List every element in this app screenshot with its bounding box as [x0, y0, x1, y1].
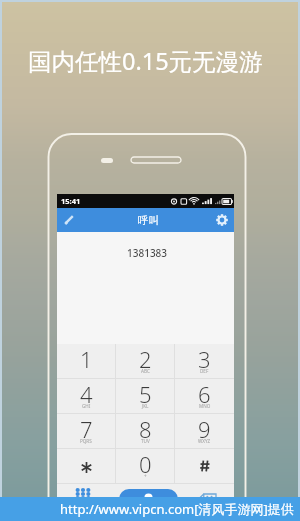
button[interactable]: 8 — [116, 414, 174, 448]
staticText: 5 — [139, 379, 152, 409]
button[interactable]: 9 — [175, 414, 234, 448]
button[interactable]: Keypad — [69, 484, 97, 504]
staticText: ABC — [141, 368, 150, 374]
staticText: TUV — [141, 438, 150, 444]
staticText: PQRS — [80, 438, 92, 444]
staticText: 1 — [80, 344, 93, 374]
button[interactable]: Compose — [57, 208, 81, 232]
button[interactable]: 3 — [175, 344, 234, 378]
staticText: http://www.vipcn.com[清风手游网]提供 — [60, 500, 294, 518]
button[interactable] — [175, 449, 234, 483]
staticText: GHI — [82, 403, 91, 409]
staticText: 1381383 — [127, 246, 168, 260]
button[interactable]: 6 — [175, 379, 234, 413]
button[interactable]: 0 — [116, 449, 174, 483]
button[interactable]: Call — [119, 489, 178, 511]
button[interactable] — [57, 449, 115, 483]
button[interactable]: 5 — [116, 379, 174, 413]
staticText: 2 — [139, 344, 152, 374]
staticText: DEF — [200, 368, 209, 374]
button[interactable]: 1 — [57, 344, 115, 378]
staticText: JKL — [142, 403, 149, 409]
button[interactable]: 7 — [57, 414, 115, 448]
staticText: 3 — [198, 344, 211, 374]
staticText: 呼叫 — [138, 214, 159, 227]
staticText: 0 — [139, 449, 152, 479]
staticText: MNO — [199, 403, 211, 409]
staticText: 7 — [80, 414, 93, 444]
staticText: 4 — [80, 379, 93, 409]
button[interactable]: 4 — [57, 379, 115, 413]
staticText: WXYZ — [198, 438, 211, 444]
staticText: 9 — [198, 414, 211, 444]
staticText: 国内任性0.15元无漫游 — [28, 45, 263, 77]
button[interactable]: 2 — [116, 344, 174, 378]
button[interactable]: Backspace — [193, 489, 221, 507]
staticText: 8 — [139, 414, 152, 444]
staticText: 15:41 — [61, 196, 81, 206]
button[interactable]: Settings — [210, 208, 234, 232]
staticText: + — [144, 473, 147, 479]
staticText: 6 — [198, 379, 211, 409]
